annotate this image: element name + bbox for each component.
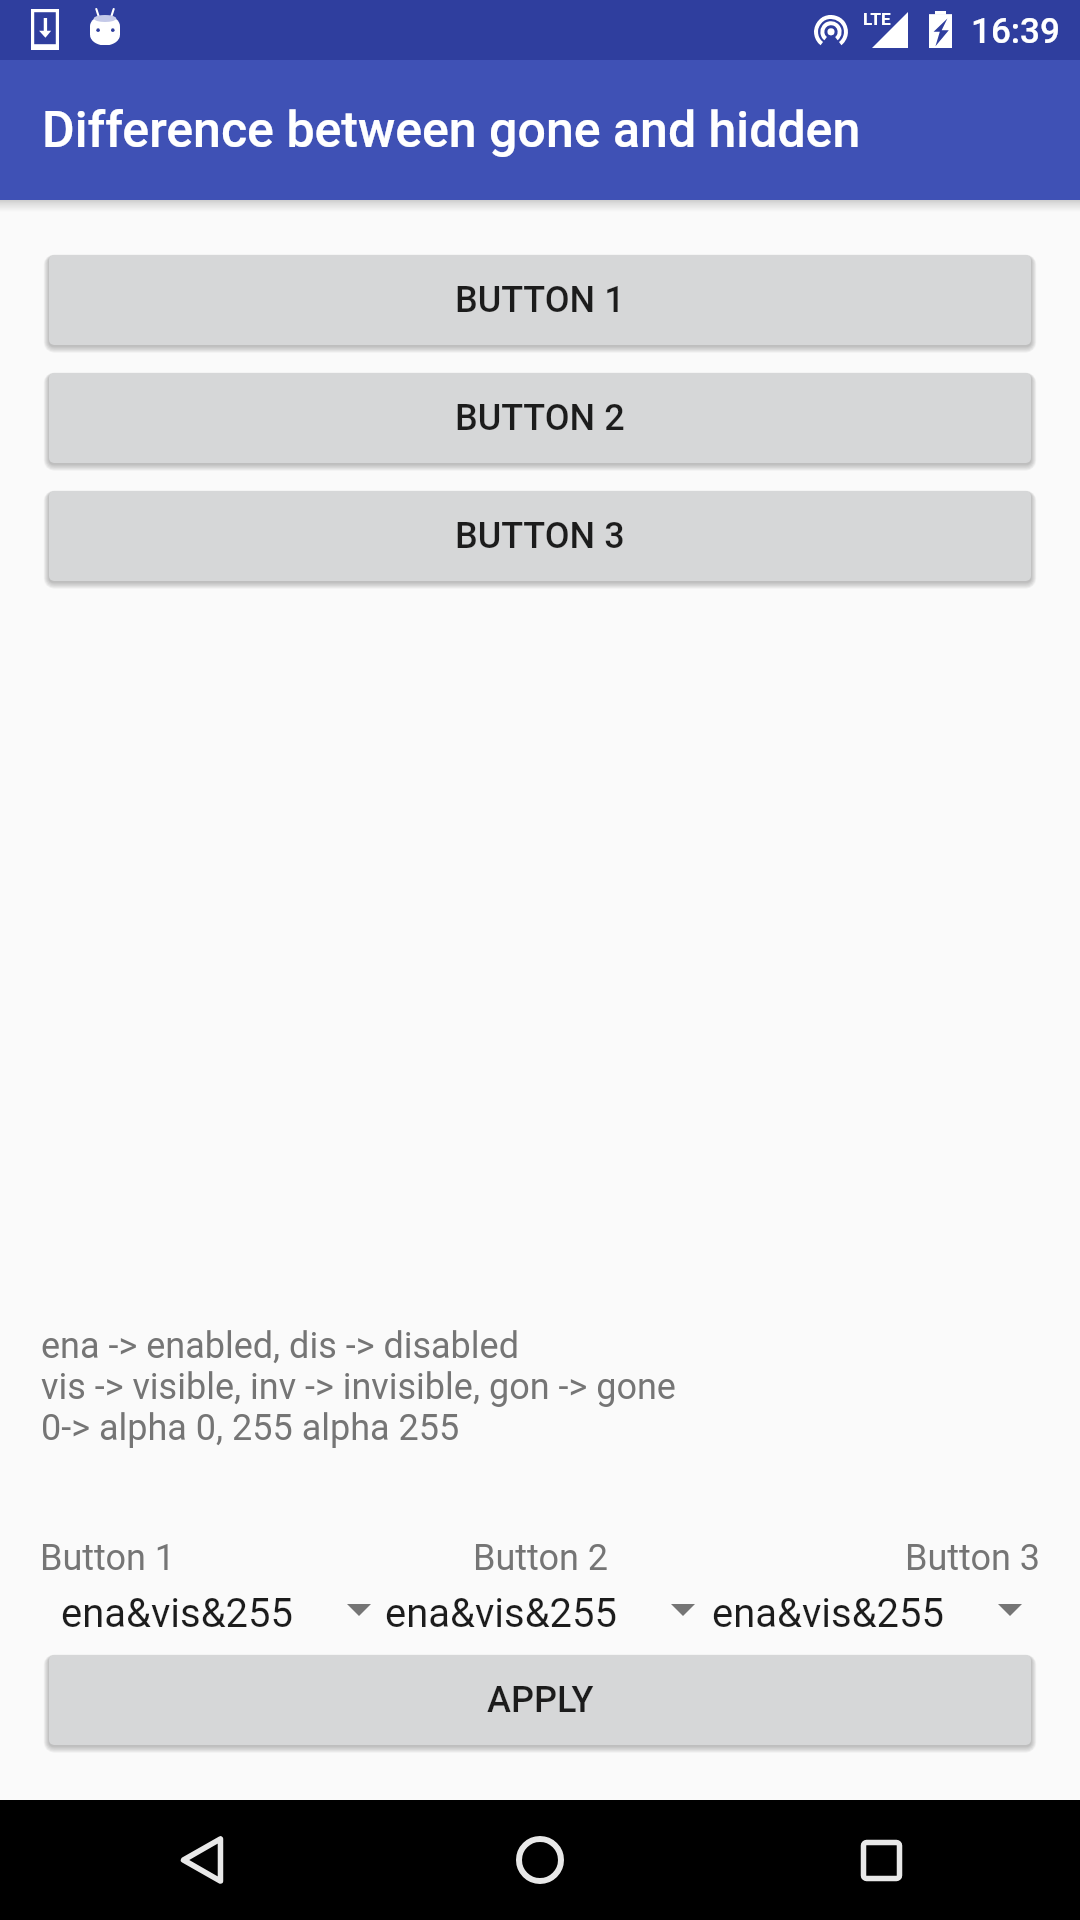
staticText: BUTTON 3 [455, 515, 625, 557]
button[interactable]: ena&vis&255 [362, 1586, 696, 1634]
staticText: 0-> alpha 0, 255 alpha 255 [41, 1407, 460, 1448]
staticText: vis -> visible, inv -> invisible, gon ->… [41, 1366, 676, 1407]
button[interactable]: BUTTON 2 [49, 373, 1031, 463]
staticText: 16:39 [971, 11, 1060, 52]
staticText: ena&vis&255 [385, 1590, 618, 1637]
button[interactable]: ena&vis&255 [38, 1586, 372, 1634]
button[interactable]: Recent apps [836, 1815, 926, 1905]
staticText: Button 2 [374, 1537, 707, 1579]
staticText: ena&vis&255 [712, 1590, 945, 1637]
staticText: Button 3 [707, 1537, 1040, 1579]
staticText: Difference between gone and hidden [42, 101, 861, 160]
staticText: ena -> enabled, dis -> disabled [41, 1325, 519, 1366]
staticText: APPLY [487, 1679, 594, 1721]
button[interactable]: Home [495, 1815, 585, 1905]
staticText: BUTTON 2 [455, 397, 625, 439]
staticText: Button 1 [40, 1537, 374, 1579]
staticText: ena&vis&255 [61, 1590, 294, 1637]
button[interactable]: Back [157, 1815, 247, 1905]
staticText: BUTTON 1 [455, 279, 625, 321]
button[interactable]: ena&vis&255 [689, 1586, 1023, 1634]
button[interactable]: BUTTON 3 [49, 491, 1031, 581]
button[interactable]: BUTTON 1 [49, 255, 1031, 345]
button[interactable]: APPLY [49, 1655, 1031, 1745]
staticText: LTE [863, 9, 891, 29]
